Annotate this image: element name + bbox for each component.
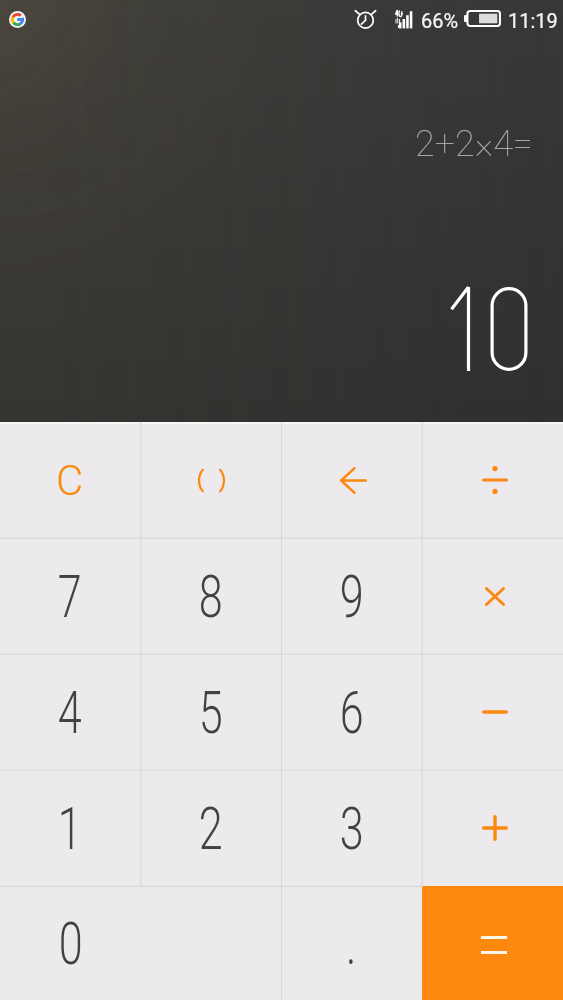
button[interactable]: Plus	[422, 770, 563, 886]
staticText: 4	[58, 677, 82, 747]
staticText: 6	[340, 677, 364, 747]
button[interactable]: Parentheses	[140, 422, 281, 538]
button[interactable]: 5	[140, 654, 281, 770]
staticText: 2+2×4=	[415, 123, 533, 165]
button[interactable]: 0	[0, 886, 281, 1000]
staticText: .	[346, 908, 357, 978]
button[interactable]: .	[281, 886, 422, 1000]
staticText: 2	[199, 793, 223, 863]
button[interactable]: 8	[140, 538, 281, 654]
staticText: 1	[58, 793, 82, 863]
staticText: 7	[58, 561, 82, 631]
button[interactable]: 4	[0, 654, 140, 770]
staticText: 0	[59, 908, 83, 978]
button[interactable]: Minus	[422, 654, 563, 770]
button[interactable]: 9	[281, 538, 422, 654]
button[interactable]: 6	[281, 654, 422, 770]
button[interactable]: 2	[140, 770, 281, 886]
staticText: C	[56, 456, 84, 505]
button[interactable]: 7	[0, 538, 140, 654]
button[interactable]: Multiply	[422, 538, 563, 654]
staticText: 8	[199, 561, 223, 631]
staticText: 11:19	[508, 9, 558, 32]
button[interactable]: C	[0, 422, 140, 538]
button[interactable]: Backspace	[281, 422, 422, 538]
button[interactable]: Divide	[422, 422, 563, 538]
button[interactable]: Equals	[422, 886, 563, 1000]
button[interactable]: 3	[281, 770, 422, 886]
staticText: 66%	[421, 9, 459, 32]
staticText: 9	[340, 561, 364, 631]
button[interactable]: 1	[0, 770, 140, 886]
staticText: 3	[340, 793, 364, 863]
staticText: 5	[199, 677, 223, 747]
